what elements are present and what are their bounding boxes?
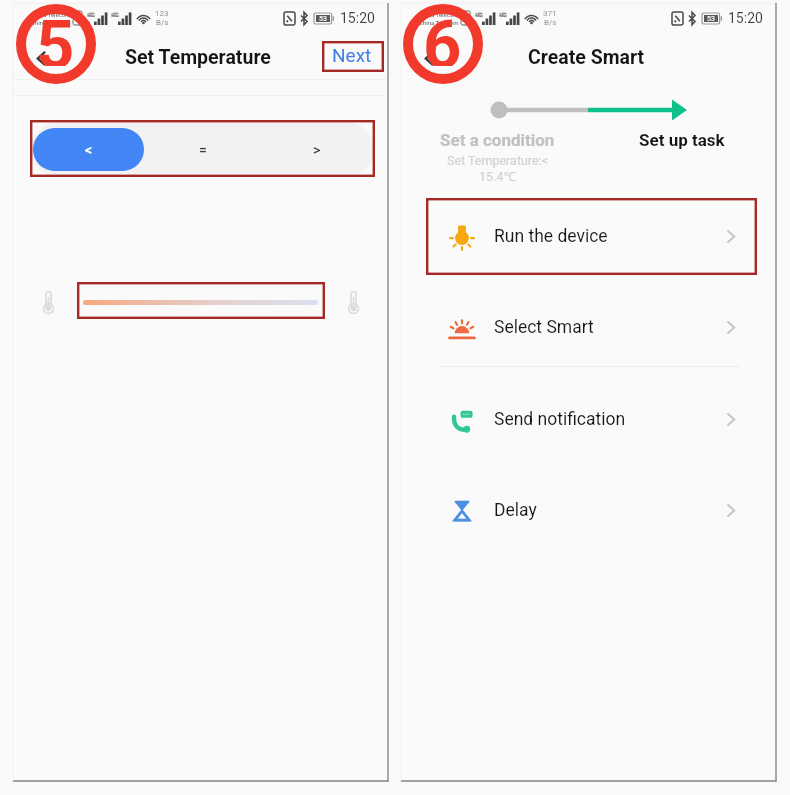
staticText: China Telecom	[419, 11, 459, 18]
staticText: 5	[36, 6, 75, 66]
button[interactable]: Select Smart	[401, 304, 776, 351]
button[interactable]: Send notification	[401, 396, 776, 443]
button[interactable]: =	[148, 128, 258, 171]
staticText: Next	[332, 44, 372, 66]
staticText: Create Smart	[528, 46, 645, 69]
staticText: Set up task	[639, 130, 725, 150]
staticText: Send notification	[494, 409, 626, 430]
staticText: Delay	[494, 500, 537, 521]
staticText: >	[313, 142, 321, 158]
staticText: China Telecom	[31, 11, 71, 18]
button[interactable]: Run the device	[401, 213, 776, 260]
staticText: =	[199, 142, 207, 158]
staticText: China Telecom	[31, 19, 71, 26]
staticText: B/s	[156, 18, 169, 27]
staticText: Run the device	[494, 226, 608, 247]
staticText: Set Temperature	[125, 46, 271, 69]
staticText: 15:20	[340, 10, 375, 26]
staticText: 15.4℃	[479, 168, 516, 185]
button[interactable]: Delay	[401, 487, 776, 534]
staticText: Set Temperature:<	[447, 153, 548, 168]
button[interactable]: >	[262, 128, 372, 171]
button[interactable]: Back	[23, 40, 59, 76]
staticText: 123	[155, 9, 169, 18]
staticText: Set a condition	[440, 130, 555, 150]
staticText: 53	[319, 15, 327, 22]
button[interactable]: <	[33, 128, 144, 171]
staticText: 371	[543, 9, 557, 18]
button[interactable]: Back	[411, 40, 447, 76]
staticText: 15:20	[728, 10, 763, 26]
staticText: B/s	[544, 18, 557, 27]
staticText: Select Smart	[494, 317, 594, 338]
staticText: China Telecom	[419, 19, 459, 26]
staticText: 6	[423, 6, 462, 66]
button[interactable]: Next	[332, 44, 372, 66]
staticText: <	[85, 142, 93, 158]
staticText: 53	[707, 15, 715, 22]
